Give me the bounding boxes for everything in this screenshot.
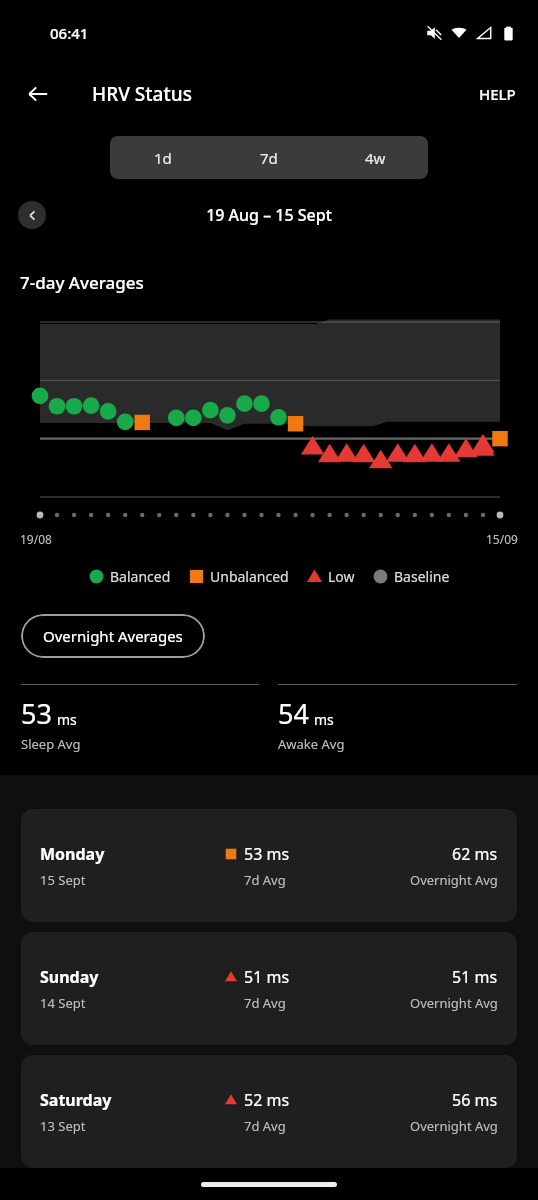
staticText: 15/09 (486, 531, 518, 547)
button[interactable]: 4w (322, 136, 428, 179)
staticText: 56 ms (452, 1089, 498, 1111)
staticText: 62 ms (452, 843, 498, 865)
staticText: 51 ms (244, 966, 290, 988)
staticText: Balanced (110, 567, 171, 586)
staticText: Sleep Avg (21, 735, 81, 753)
staticText: Awake Avg (278, 735, 345, 753)
staticText: 7d Avg (244, 871, 286, 889)
staticText: 15 Sept (40, 871, 86, 889)
staticText: 7d Avg (244, 994, 286, 1012)
button[interactable]: 7d (216, 136, 322, 179)
button[interactable]: Overnight Averages (21, 614, 205, 658)
staticText: 7-day Averages (20, 271, 144, 294)
staticText: Unbalanced (210, 567, 289, 586)
button[interactable]: Previous period (18, 201, 46, 229)
staticText: 14 Sept (40, 994, 86, 1012)
staticText: 53 ms (244, 843, 290, 865)
staticText: Sunday (40, 966, 99, 988)
staticText: 54 (278, 695, 309, 732)
staticText: Monday (40, 843, 105, 865)
staticText: Overnight Avg (410, 994, 498, 1012)
button[interactable]: Back (18, 74, 58, 114)
staticText: ms (57, 710, 77, 729)
staticText: 4w (365, 148, 386, 168)
staticText: HRV Status (92, 81, 192, 107)
staticText: Overnight Avg (410, 1117, 498, 1135)
button[interactable]: Monday (21, 809, 517, 922)
staticText: 06:41 (50, 23, 89, 43)
staticText: Low (328, 567, 355, 586)
staticText: 19/08 (20, 531, 52, 547)
staticText: ms (314, 710, 334, 729)
staticText: HELP (479, 84, 516, 104)
staticText: Overnight Avg (410, 871, 498, 889)
button[interactable]: 1d (110, 136, 216, 179)
staticText: 51 ms (452, 966, 498, 988)
staticText: Saturday (40, 1089, 112, 1111)
button[interactable]: Saturday (21, 1055, 517, 1168)
staticText: 7d Avg (244, 1117, 286, 1135)
staticText: 52 ms (244, 1089, 290, 1111)
staticText: 13 Sept (40, 1117, 86, 1135)
button[interactable]: HELP (467, 76, 528, 112)
staticText: Baseline (394, 567, 450, 586)
staticText: 1d (154, 148, 172, 168)
button[interactable]: Sunday (21, 932, 517, 1045)
staticText: 53 (21, 695, 52, 732)
staticText: Overnight Averages (43, 626, 183, 646)
staticText: 19 Aug – 15 Sept (206, 204, 332, 226)
staticText: 7d (260, 148, 278, 168)
